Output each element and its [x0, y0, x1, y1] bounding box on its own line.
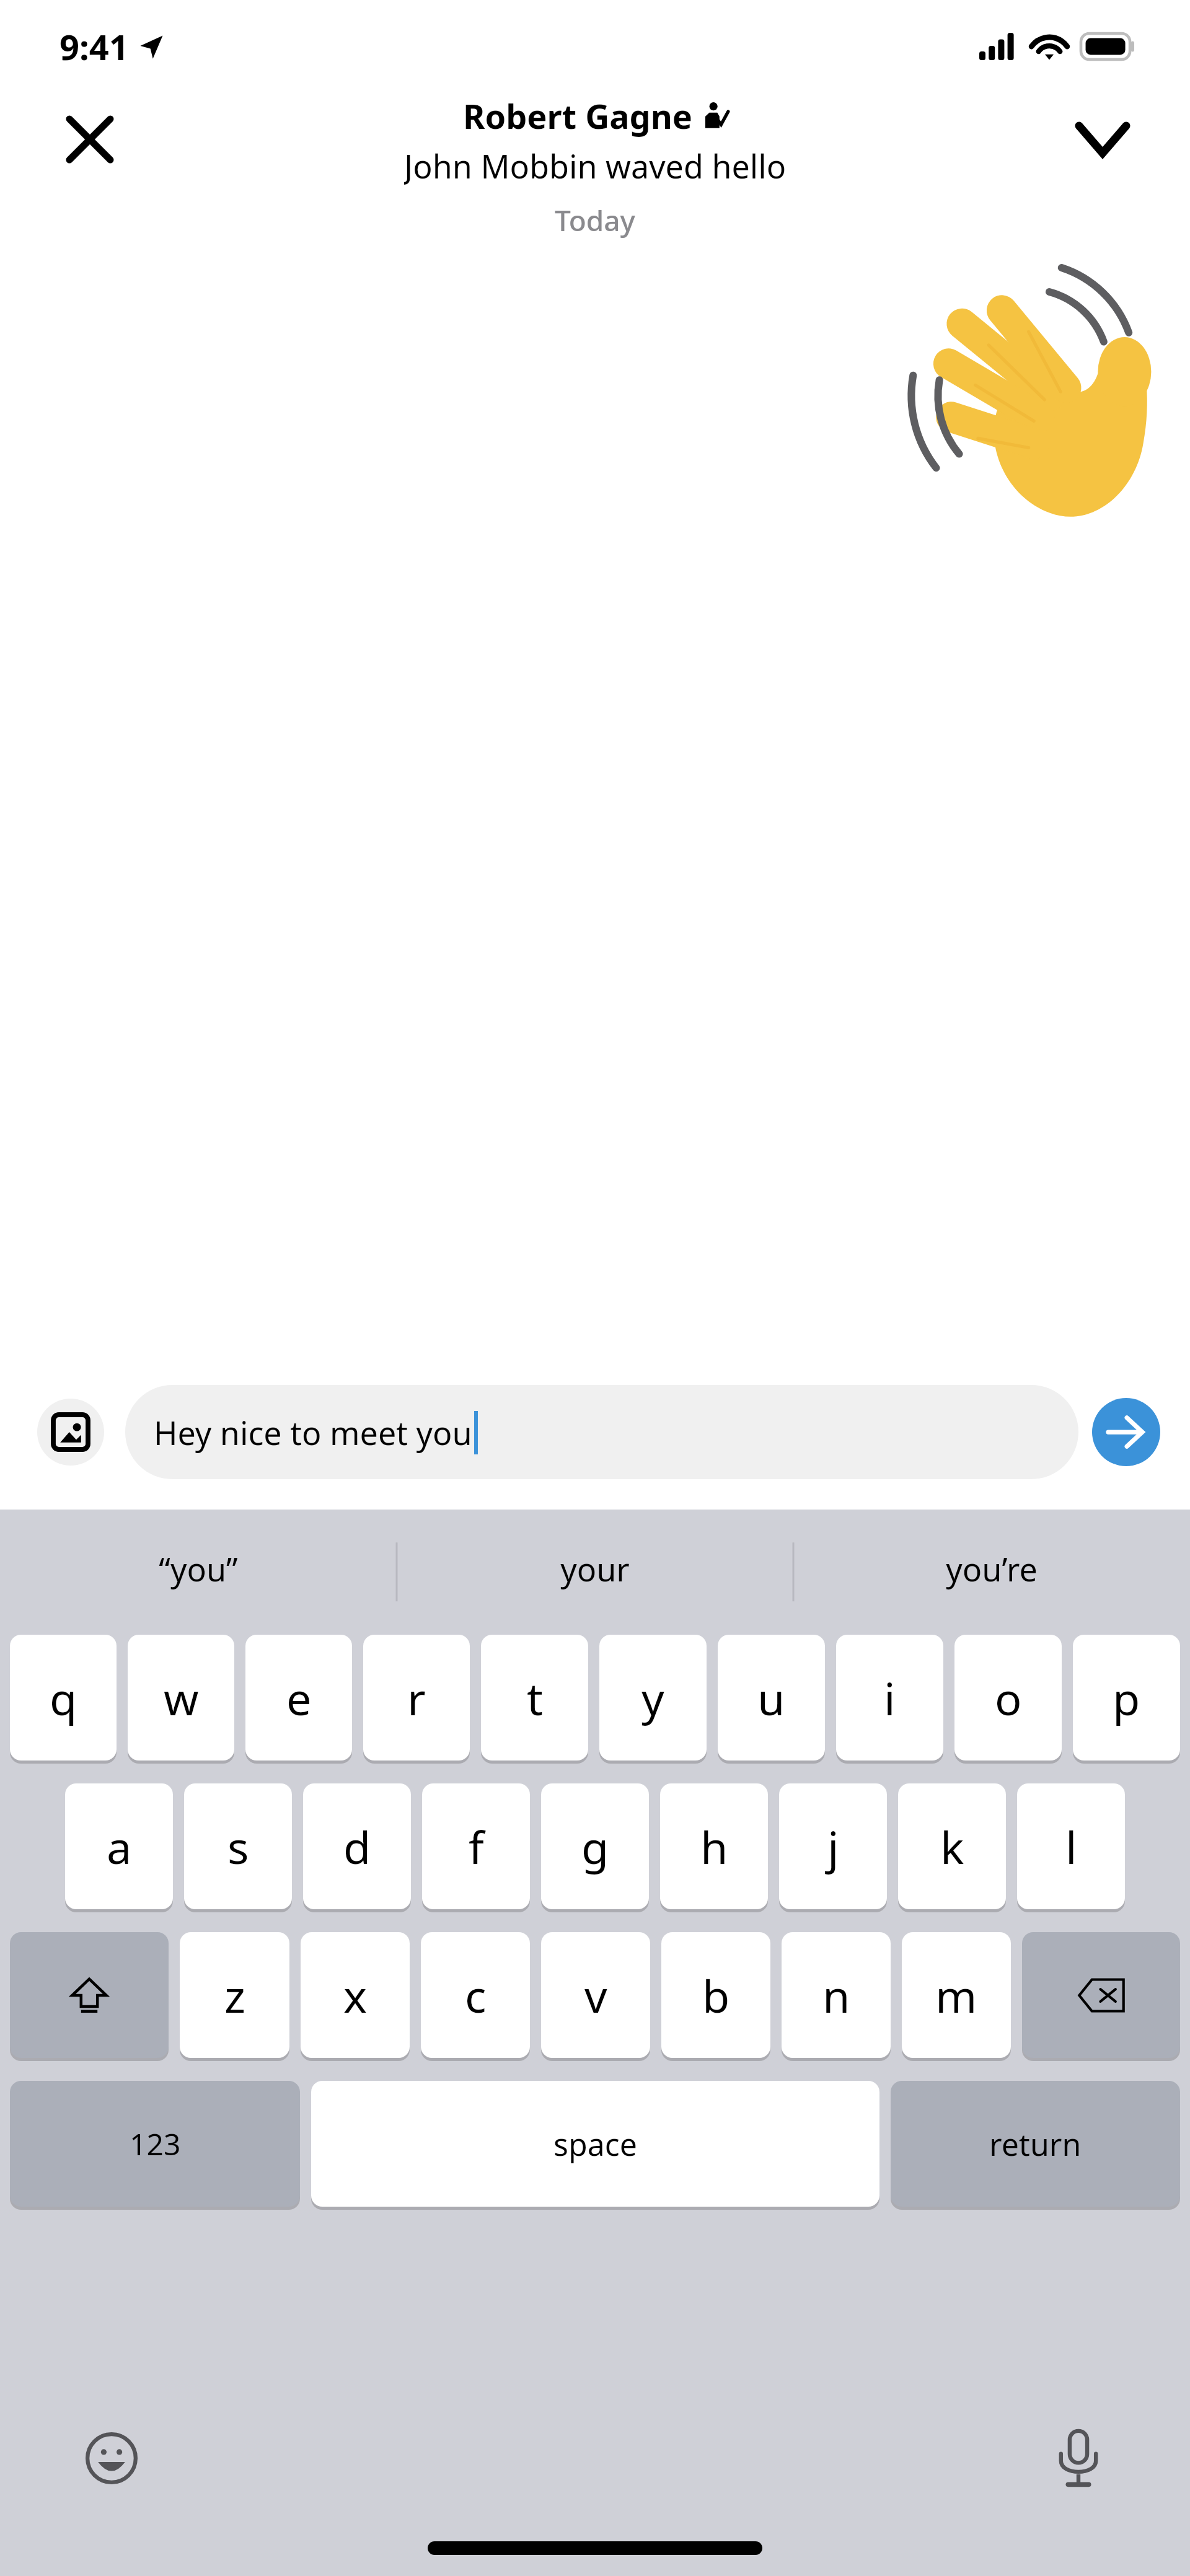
button[interactable]: o [954, 1635, 1062, 1761]
staticText: n [822, 1965, 850, 2026]
staticText: t [527, 1668, 543, 1728]
staticText: e [286, 1668, 312, 1728]
staticText: “you” [159, 1547, 238, 1591]
button[interactable]: e [245, 1635, 352, 1761]
staticText: z [224, 1965, 245, 2026]
staticText: v [584, 1965, 607, 2026]
staticText: q [50, 1668, 77, 1728]
button[interactable]: h [660, 1783, 768, 1909]
button[interactable]: z [180, 1932, 289, 2058]
button[interactable]: q [10, 1635, 117, 1761]
staticText: Hey nice to meet you [154, 1410, 472, 1454]
staticText: r [407, 1668, 426, 1728]
button[interactable]: Send [1092, 1398, 1160, 1466]
button[interactable]: Add photo [37, 1399, 104, 1466]
staticText: a [107, 1816, 132, 1877]
staticText: o [995, 1668, 1022, 1728]
button[interactable]: k [898, 1783, 1006, 1909]
button[interactable]: j [779, 1783, 887, 1909]
staticText: space [553, 2123, 637, 2165]
button[interactable]: g [541, 1783, 649, 1909]
button[interactable]: Expand [1069, 105, 1137, 174]
staticText: John Mobbin waved hello [404, 144, 787, 186]
button[interactable]: r [363, 1635, 470, 1761]
staticText: g [581, 1816, 609, 1877]
button[interactable] [1022, 1932, 1180, 2058]
button[interactable]: you’re [793, 1510, 1190, 1627]
button[interactable]: Close [56, 105, 124, 174]
staticText: f [469, 1816, 484, 1877]
staticText: i [884, 1668, 896, 1728]
staticText: Today [555, 201, 635, 240]
button[interactable]: w [128, 1635, 234, 1761]
button[interactable]: d [303, 1783, 411, 1909]
button[interactable]: space [311, 2081, 879, 2207]
button[interactable]: Hey nice to meet you [125, 1385, 1078, 1479]
staticText: you’re [946, 1547, 1038, 1591]
staticText: h [700, 1816, 728, 1877]
button[interactable]: y [599, 1635, 707, 1761]
other: Shift [10, 1932, 169, 2061]
staticText: m [935, 1965, 977, 2026]
staticText: c [465, 1965, 487, 2026]
staticText: k [940, 1816, 964, 1877]
button[interactable]: u [718, 1635, 825, 1761]
button[interactable]: v [541, 1932, 650, 2058]
button[interactable]: 123 [10, 2081, 300, 2207]
button[interactable]: Emoji [81, 2427, 143, 2489]
button[interactable]: x [301, 1932, 410, 2058]
button[interactable]: Dictate [1047, 2427, 1109, 2489]
button[interactable]: your [397, 1510, 793, 1627]
staticText: Robert Gagne [463, 93, 693, 139]
button[interactable]: p [1073, 1635, 1180, 1761]
button[interactable]: i [836, 1635, 943, 1761]
button[interactable]: m [902, 1932, 1011, 2058]
staticText: b [702, 1965, 730, 2026]
staticText: u [757, 1668, 785, 1728]
staticText: y [641, 1668, 664, 1728]
button[interactable]: “you” [0, 1510, 397, 1627]
button[interactable]: return [891, 2081, 1180, 2207]
button[interactable]: s [184, 1783, 292, 1909]
button[interactable]: n [782, 1932, 891, 2058]
staticText: w [164, 1668, 199, 1728]
staticText: p [1113, 1668, 1140, 1728]
button[interactable]: f [422, 1783, 530, 1909]
staticText: your [560, 1547, 630, 1591]
button[interactable]: a [65, 1783, 173, 1909]
staticText: 123 [130, 2124, 181, 2164]
staticText: l [1065, 1816, 1077, 1877]
button[interactable]: t [481, 1635, 588, 1761]
staticText: j [827, 1816, 839, 1877]
staticText: 9:41 [59, 23, 129, 70]
button[interactable] [10, 1932, 169, 2058]
button[interactable]: b [661, 1932, 770, 2058]
staticText: d [343, 1816, 371, 1877]
other: Backspace [1022, 1932, 1180, 2061]
button[interactable]: l [1017, 1783, 1125, 1909]
button[interactable]: c [421, 1932, 530, 2058]
staticText: return [989, 2123, 1082, 2165]
staticText: s [227, 1816, 249, 1877]
staticText: x [343, 1965, 368, 2026]
